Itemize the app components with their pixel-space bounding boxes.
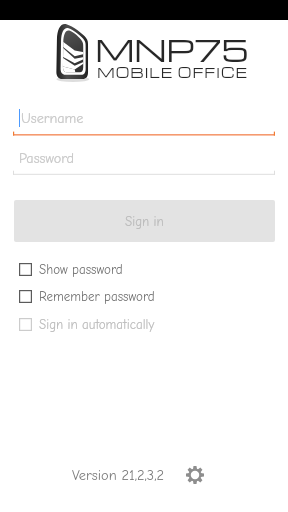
staticText: Sign in — [125, 214, 164, 229]
staticText: Username — [21, 110, 84, 126]
staticText: MNP75 — [95, 28, 248, 69]
button[interactable]: Show password — [19, 258, 123, 281]
staticText: Version 21,2,3,2 — [72, 467, 165, 484]
staticText: Remember password — [39, 289, 155, 304]
staticText: Show password — [39, 262, 123, 277]
staticText: Sign in automatically — [39, 317, 155, 332]
button[interactable]: Sign in — [14, 200, 275, 242]
staticText: MOBILE OFFICE — [97, 63, 248, 81]
button[interactable]: Settings — [186, 466, 204, 484]
button[interactable]: Username — [19, 109, 84, 127]
button[interactable]: Sign in automatically — [19, 313, 155, 336]
button[interactable]: Remember password — [19, 285, 155, 308]
button[interactable]: Password — [19, 150, 74, 166]
